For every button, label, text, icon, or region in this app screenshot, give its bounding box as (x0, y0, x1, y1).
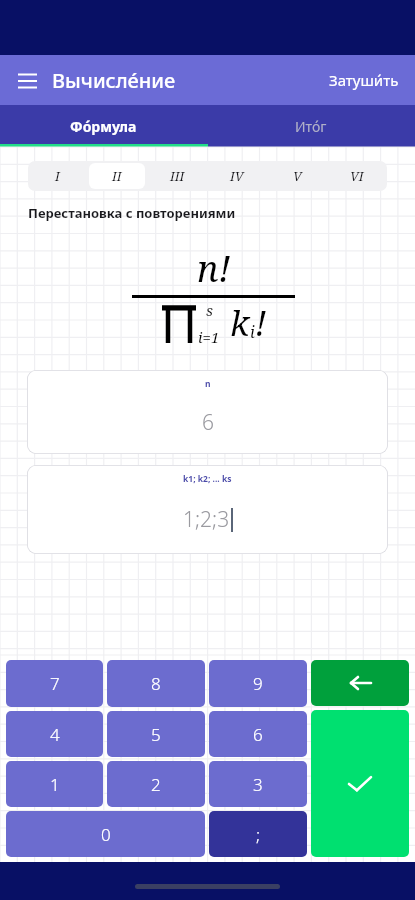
staticText: 1;2;3 (183, 505, 230, 534)
staticText: II (112, 167, 122, 185)
staticText: s (206, 300, 213, 320)
button[interactable]: 8 (107, 660, 205, 707)
button[interactable]: Ито́г (207, 105, 415, 147)
button[interactable]: III (149, 163, 205, 189)
button[interactable]: 2 (107, 761, 205, 807)
staticText: 9 (253, 672, 263, 695)
button[interactable]: n (27, 370, 388, 454)
button[interactable]: 6 (209, 711, 307, 757)
button[interactable]: II (89, 163, 145, 189)
button[interactable]: Confirm (311, 710, 409, 857)
button[interactable]: ; (209, 811, 307, 857)
button[interactable]: I (30, 163, 85, 189)
button[interactable]: Затуши́ть (317, 61, 411, 99)
button[interactable]: V (269, 163, 325, 189)
staticText: 5 (151, 723, 161, 746)
staticText: 3 (253, 773, 263, 796)
button[interactable]: 5 (107, 711, 205, 757)
staticText: 6 (202, 408, 214, 437)
staticText: Перестановка с повторениями (28, 204, 236, 222)
staticText: i (250, 321, 255, 343)
staticText: 1 (50, 773, 60, 796)
staticText: 4 (50, 723, 60, 746)
button[interactable]: 9 (209, 660, 307, 707)
staticText: 0 (101, 823, 111, 846)
staticText: Ито́г (295, 117, 327, 136)
button[interactable]: IV (209, 163, 265, 189)
staticText: ; (256, 823, 261, 846)
staticText: n (205, 378, 211, 390)
staticText: Фо́рмула (70, 117, 137, 136)
staticText: i=1 (198, 327, 220, 347)
staticText: k1; k2; ... ks (183, 473, 232, 485)
staticText: I (55, 167, 60, 185)
staticText: n! (197, 244, 231, 293)
button[interactable]: k1; k2; ... ks (27, 465, 388, 554)
staticText: 6 (253, 723, 263, 746)
button[interactable]: 1 (6, 761, 103, 807)
staticText: 2 (151, 773, 161, 796)
staticText: IV (230, 167, 244, 185)
button[interactable]: 0 (6, 811, 205, 857)
staticText: 7 (50, 672, 60, 695)
button[interactable]: Фо́рмула (0, 105, 207, 147)
staticText: V (293, 167, 302, 185)
button[interactable]: VI (329, 163, 385, 189)
staticText: VI (350, 167, 364, 185)
button[interactable]: 7 (6, 660, 103, 707)
staticText: ! (255, 300, 267, 346)
button[interactable]: 4 (6, 711, 103, 757)
staticText: III (170, 167, 185, 185)
button[interactable]: Backspace (311, 660, 409, 706)
button[interactable]: Menu (5, 58, 49, 102)
staticText: Вычисле́ние (52, 67, 176, 94)
button[interactable]: 3 (209, 761, 307, 807)
staticText: Затуши́ть (329, 70, 399, 90)
staticText: 8 (151, 672, 161, 695)
staticText: k (230, 300, 250, 346)
